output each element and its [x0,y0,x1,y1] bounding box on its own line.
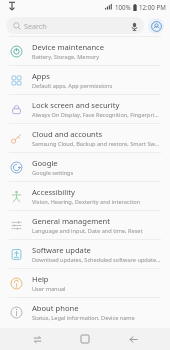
staticText: Samsung Cloud, Backup and restore, Smart… [32,140,160,148]
button[interactable]: Google [0,152,170,181]
button[interactable]: Home [74,328,96,350]
button[interactable]: Accessibility [0,181,170,210]
staticText: Device maintenance [32,42,105,52]
button[interactable]: General management [0,210,170,239]
staticText: Google settings [32,169,74,177]
button[interactable]: About phone [0,297,170,326]
staticText: Help [32,274,49,284]
button[interactable]: Apps [0,65,170,94]
button[interactable]: Account [148,18,164,34]
staticText: General management [32,216,111,226]
staticText: Cloud and accounts [32,129,103,139]
staticText: Battery, Storage, Memory [32,53,100,61]
staticText: Accessibility [32,187,75,197]
button[interactable]: Software update [0,239,170,268]
button[interactable]: Lock screen and security [0,94,170,123]
button[interactable]: Voice search [128,20,140,32]
staticText: Language and input, Date and time, Reset [32,227,143,235]
staticText: 100% [115,3,131,11]
staticText: User manual [32,285,66,293]
staticText: Software update [32,245,91,255]
staticText: Status, Legal information, Device name [32,314,135,322]
button[interactable]: Search [6,17,144,34]
button[interactable]: Back [122,328,144,350]
button[interactable]: Device maintenance [0,37,170,65]
staticText: Apps [32,71,50,81]
button[interactable]: Recents [26,328,48,350]
staticText: About phone [32,303,79,313]
button[interactable]: Cloud and accounts [0,123,170,152]
staticText: Default apps, App permissions [32,82,113,90]
staticText: Search [24,21,47,31]
staticText: Google [32,158,58,168]
staticText: Download updates, Scheduled software upd… [32,256,161,264]
staticText: Vision, Hearing, Dexterity and interacti… [32,198,140,206]
staticText: 12:00 PM [139,3,166,11]
staticText: Always On Display, Face Recognition, Fin… [32,111,159,119]
staticText: Lock screen and security [32,100,120,110]
button[interactable]: Help [0,268,170,297]
